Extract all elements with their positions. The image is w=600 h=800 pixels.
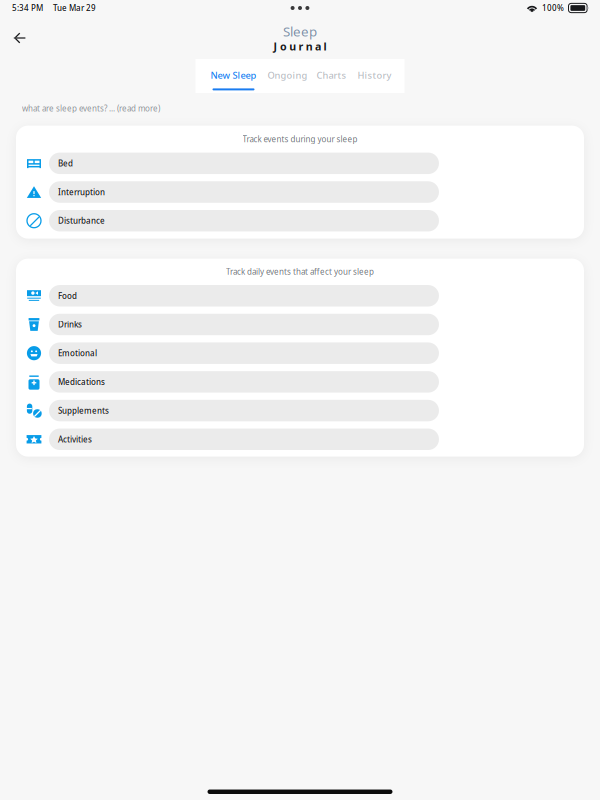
staticText: 100% <box>542 3 564 13</box>
staticText: Interruption <box>58 187 105 197</box>
staticText: Tue Mar 29 <box>53 3 96 13</box>
button[interactable]: Interruption <box>16 181 584 210</box>
button[interactable]: Food <box>16 285 584 314</box>
staticText: Track daily events that affect your slee… <box>226 266 374 277</box>
button[interactable]: Back <box>10 25 36 51</box>
staticText: Charts <box>316 69 346 81</box>
staticText: Sleep <box>283 23 317 40</box>
staticText: Journal <box>274 39 326 53</box>
button[interactable]: Drinks <box>16 314 584 342</box>
staticText: Activities <box>58 434 92 445</box>
button[interactable]: History <box>356 59 392 93</box>
staticText: Medications <box>58 377 105 387</box>
button[interactable]: Charts <box>315 59 347 93</box>
button[interactable]: Emotional <box>16 342 584 371</box>
staticText: Emotional <box>58 348 97 358</box>
staticText: Bed <box>58 158 73 169</box>
button[interactable]: Disturbance <box>16 210 584 239</box>
staticText: New Sleep <box>210 69 256 81</box>
staticText: what are sleep events? ... (read more) <box>22 103 160 114</box>
button[interactable]: Supplements <box>16 400 584 428</box>
button[interactable]: Activities <box>16 428 584 457</box>
staticText: 5:34 PM <box>12 3 43 13</box>
button[interactable]: Ongoing <box>266 59 308 93</box>
staticText: Ongoing <box>267 69 307 81</box>
staticText: Track events during your sleep <box>242 134 357 144</box>
button[interactable]: Medications <box>16 371 584 400</box>
button[interactable]: Bed <box>16 153 584 181</box>
staticText: Disturbance <box>58 215 105 226</box>
staticText: History <box>357 69 391 81</box>
button[interactable]: New Sleep <box>209 59 257 93</box>
staticText: Supplements <box>58 405 109 416</box>
staticText: Food <box>58 290 77 301</box>
staticText: Drinks <box>58 319 82 330</box>
